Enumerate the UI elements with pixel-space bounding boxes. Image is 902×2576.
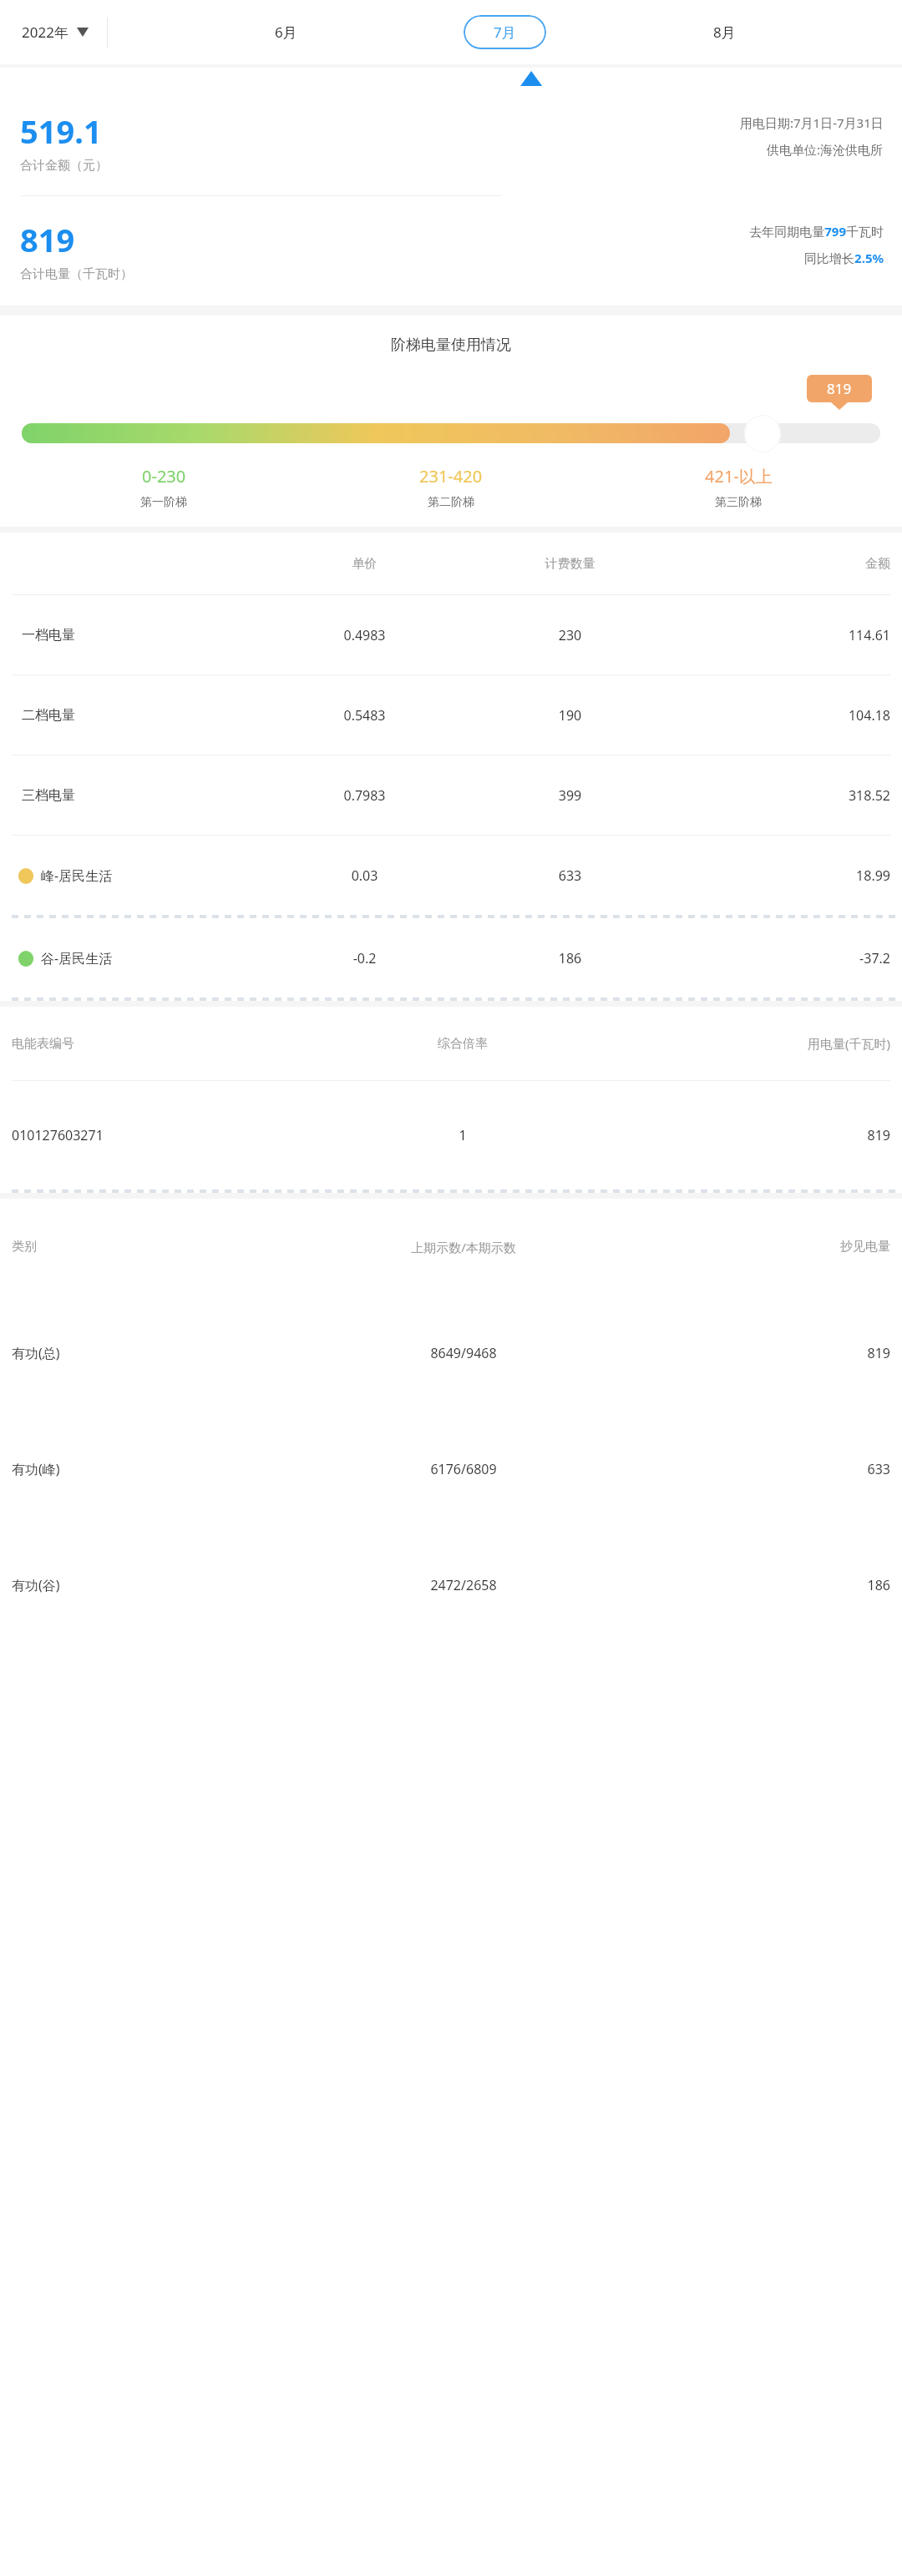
staticText: 有功(总) [12, 1344, 291, 1362]
button[interactable]: 6月 [250, 15, 322, 49]
button[interactable]: 二档电量 [12, 675, 890, 755]
staticText: -0.2 [269, 949, 460, 967]
staticText: 819 [827, 379, 852, 398]
staticText: 谷-居民生活 [41, 949, 113, 967]
staticText: 114.61 [680, 626, 890, 644]
staticText: 第三阶梯 [715, 495, 762, 510]
button[interactable]: 有功(谷) [12, 1527, 890, 1643]
button[interactable]: 有功(峰) [12, 1411, 890, 1527]
staticText: 一档电量 [22, 627, 75, 644]
staticText: 633 [460, 866, 680, 885]
button[interactable]: 谷-居民生活 [12, 918, 890, 998]
staticText: 7月 [494, 23, 516, 42]
staticText: 399 [460, 786, 680, 805]
staticText: 0.5483 [269, 706, 460, 725]
staticText: 三档电量 [22, 787, 75, 804]
staticText: 0.03 [269, 866, 460, 885]
staticText: 抄见电量 [636, 1239, 890, 1255]
staticText: 231-420 [419, 465, 483, 487]
staticText: -37.2 [680, 949, 890, 967]
staticText: 819 [581, 1126, 890, 1144]
staticText: 类别 [12, 1239, 291, 1255]
button[interactable]: 8月 [688, 15, 761, 49]
staticText: 633 [636, 1460, 890, 1478]
staticText: 去年同期电量799千瓦时 [749, 223, 884, 240]
staticText: 519.1 [20, 109, 102, 153]
other: Usage level [744, 415, 781, 452]
staticText: 用电量(千瓦时) [581, 1035, 890, 1052]
staticText: 上期示数/本期示数 [291, 1239, 636, 1255]
staticText: 二档电量 [22, 707, 75, 724]
staticText: 有功(谷) [12, 1576, 291, 1594]
staticText: 186 [636, 1576, 890, 1594]
staticText: 合计电量（千瓦时） [20, 266, 133, 282]
staticText: 8月 [713, 23, 736, 42]
staticText: 2472/2658 [291, 1576, 636, 1594]
staticText: 190 [460, 706, 680, 725]
button[interactable]: 三档电量 [12, 755, 890, 835]
staticText: 第二阶梯 [428, 495, 474, 510]
staticText: 6176/6809 [291, 1460, 636, 1478]
staticText: 第一阶梯 [140, 495, 187, 510]
staticText: 供电单位:海沧供电所 [767, 141, 884, 158]
button[interactable]: 7月 [464, 15, 546, 49]
staticText: 综合倍率 [344, 1036, 581, 1052]
staticText: 6月 [275, 23, 297, 42]
staticText: 2022年 [22, 23, 68, 42]
staticText: 同比增长2.5% [804, 250, 884, 266]
staticText: 186 [460, 949, 680, 967]
staticText: 18.99 [680, 866, 890, 885]
staticText: 8649/9468 [291, 1344, 636, 1362]
button[interactable]: 2022年 [20, 16, 90, 48]
staticText: 电能表编号 [12, 1036, 344, 1052]
staticText: 1 [344, 1126, 581, 1144]
button[interactable]: 010127603271 [12, 1081, 890, 1190]
staticText: 230 [460, 626, 680, 644]
staticText: 计费数量 [460, 556, 680, 572]
staticText: 104.18 [680, 706, 890, 725]
staticText: 819 [20, 218, 75, 261]
button[interactable]: 一档电量 [12, 595, 890, 674]
button[interactable]: 峰-居民生活 [12, 836, 890, 915]
staticText: 用电日期:7月1日-7月31日 [740, 114, 884, 131]
staticText: 421-以上 [705, 465, 773, 487]
staticText: 金额 [680, 556, 890, 572]
staticText: 0-230 [142, 465, 186, 487]
staticText: 0.7983 [269, 786, 460, 805]
staticText: 819 [636, 1344, 890, 1362]
staticText: 峰-居民生活 [41, 866, 113, 885]
staticText: 010127603271 [12, 1126, 344, 1144]
staticText: 0.4983 [269, 626, 460, 644]
staticText: 合计金额（元） [20, 158, 108, 174]
staticText: 单价 [269, 556, 460, 572]
staticText: 有功(峰) [12, 1460, 291, 1478]
staticText: 318.52 [680, 786, 890, 805]
staticText: 阶梯电量使用情况 [391, 336, 511, 355]
button[interactable]: 有功(总) [12, 1295, 890, 1411]
